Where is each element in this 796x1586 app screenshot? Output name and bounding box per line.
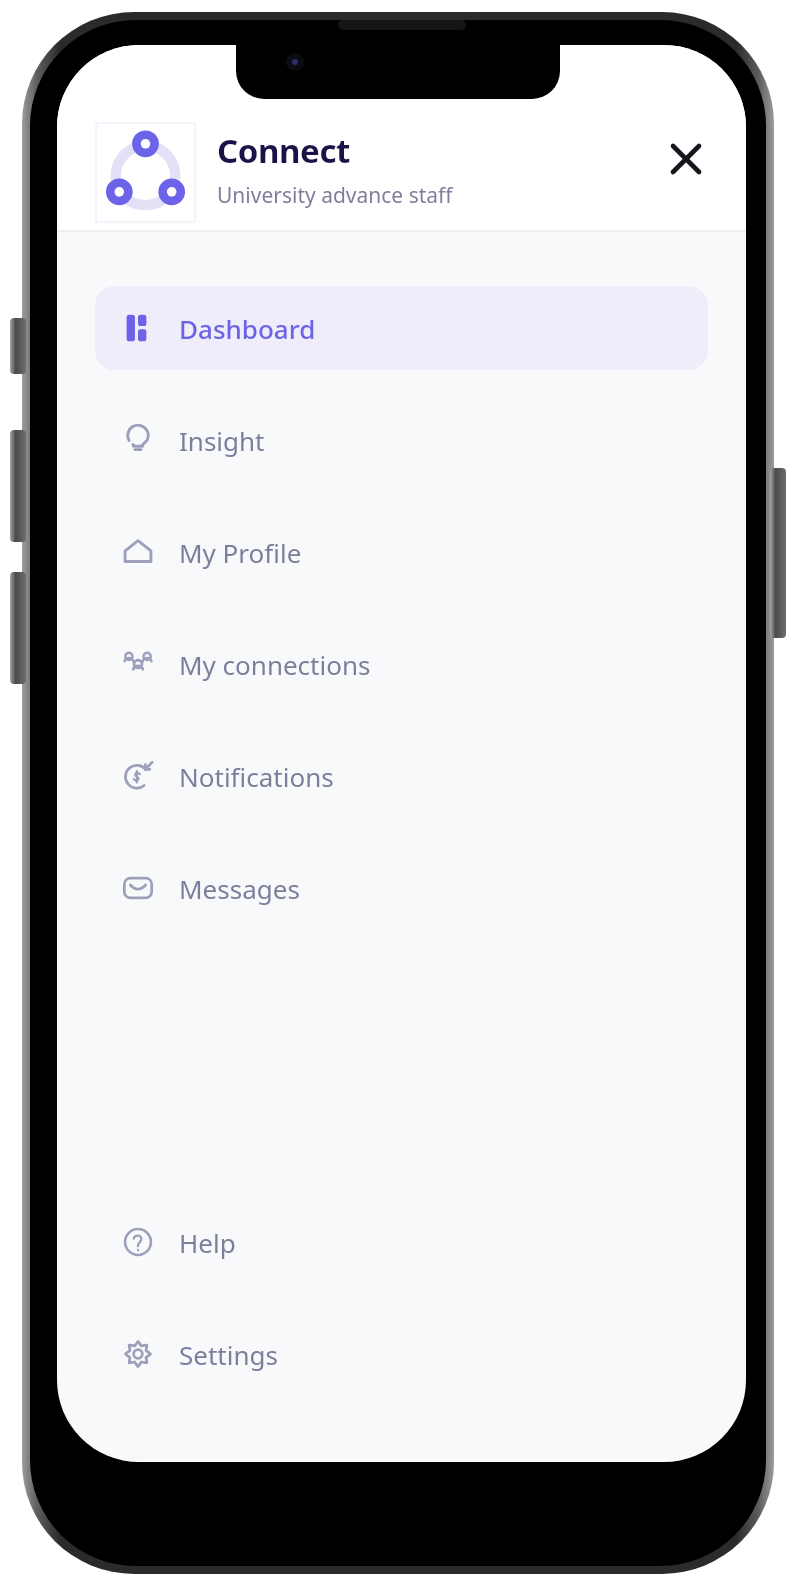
staticText: Insight: [179, 423, 265, 458]
button[interactable]: Help: [95, 1200, 708, 1284]
staticText: My Profile: [179, 535, 302, 570]
staticText: My connections: [179, 647, 371, 682]
button[interactable]: Notifications: [95, 734, 708, 818]
staticText: Notifications: [179, 759, 334, 794]
button[interactable]: Insight: [95, 398, 708, 482]
staticText: Settings: [179, 1337, 278, 1372]
staticText: Dashboard: [179, 311, 316, 346]
staticText: University advance staff: [217, 181, 453, 210]
staticText: Messages: [179, 871, 300, 906]
button[interactable]: Close: [658, 131, 714, 187]
button[interactable]: My Profile: [95, 510, 708, 594]
button[interactable]: Messages: [95, 846, 708, 930]
button[interactable]: Dashboard: [95, 286, 708, 370]
staticText: Connect: [217, 128, 350, 173]
button[interactable]: Settings: [95, 1312, 708, 1396]
staticText: Help: [179, 1225, 236, 1260]
button[interactable]: My connections: [95, 622, 708, 706]
